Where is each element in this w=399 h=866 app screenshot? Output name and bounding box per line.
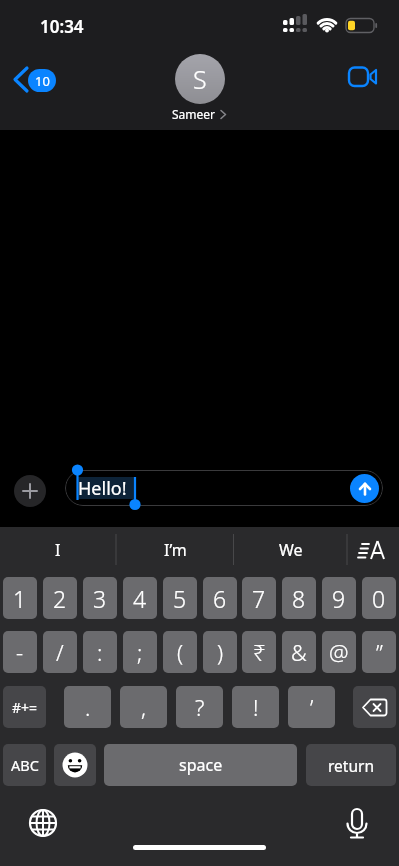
button[interactable]: ’ xyxy=(288,686,335,728)
button[interactable]: ; xyxy=(123,631,157,673)
button[interactable]: ) xyxy=(203,631,237,673)
staticText: ’ xyxy=(310,692,314,722)
staticText: 0 xyxy=(372,583,386,614)
staticText: / xyxy=(56,637,64,667)
staticText: . xyxy=(85,692,91,722)
staticText: I’m xyxy=(164,539,187,561)
staticText: ? xyxy=(195,692,205,722)
button[interactable]: ? xyxy=(176,686,223,728)
button[interactable]: 5 xyxy=(163,577,197,619)
staticText: 8 xyxy=(292,583,306,614)
button[interactable]: ( xyxy=(163,631,197,673)
button[interactable] xyxy=(334,801,379,846)
staticText: 4 xyxy=(133,583,147,614)
button[interactable] xyxy=(353,686,396,728)
staticText: , xyxy=(141,692,146,722)
staticText: 10:34 xyxy=(40,15,84,38)
button[interactable]: : xyxy=(83,631,117,673)
button[interactable] xyxy=(14,475,46,507)
button[interactable]: 2 xyxy=(43,577,77,619)
staticText: ( xyxy=(177,637,184,667)
button[interactable]: return xyxy=(306,744,396,786)
staticText: 9 xyxy=(332,583,346,614)
button[interactable]: 6 xyxy=(203,577,237,619)
button[interactable]: 4 xyxy=(123,577,157,619)
button[interactable] xyxy=(347,527,399,572)
staticText: ; xyxy=(137,637,143,667)
button[interactable] xyxy=(341,58,385,94)
staticText: Sameer xyxy=(172,106,216,122)
staticText: 7 xyxy=(252,583,266,614)
staticText: S xyxy=(193,62,207,96)
button[interactable]: ₹ xyxy=(242,631,276,673)
button[interactable]: 7 xyxy=(242,577,276,619)
staticText: ! xyxy=(253,692,259,722)
staticText: ) xyxy=(217,637,224,667)
staticText: 2 xyxy=(53,583,67,614)
staticText: 1 xyxy=(13,583,27,614)
button[interactable]: 1 xyxy=(3,577,37,619)
button[interactable]: 3 xyxy=(83,577,117,619)
button[interactable]: ! xyxy=(232,686,279,728)
button[interactable]: #+= xyxy=(3,686,46,728)
button[interactable]: & xyxy=(282,631,316,673)
staticText: 10 xyxy=(35,72,50,90)
staticText: 3 xyxy=(93,583,107,614)
staticText: #+= xyxy=(12,698,38,717)
staticText: return xyxy=(328,755,374,776)
button[interactable]: 8 xyxy=(282,577,316,619)
button[interactable]: - xyxy=(3,631,37,673)
button[interactable]: 9 xyxy=(322,577,356,619)
button[interactable]: Hello! xyxy=(65,470,383,506)
staticText: 6 xyxy=(213,583,227,614)
button[interactable] xyxy=(20,800,65,845)
button[interactable]: space xyxy=(104,744,297,786)
staticText: We xyxy=(279,539,303,561)
button[interactable]: , xyxy=(120,686,167,728)
button[interactable]: I xyxy=(0,527,116,572)
staticText: : xyxy=(97,637,103,667)
button[interactable]: I’m xyxy=(116,527,234,572)
button[interactable]: . xyxy=(64,686,111,728)
staticText: 5 xyxy=(173,583,187,614)
button[interactable]: ABC xyxy=(3,744,46,786)
button[interactable] xyxy=(350,474,379,503)
staticText: @ xyxy=(329,637,349,667)
button[interactable] xyxy=(54,744,96,786)
button[interactable]: We xyxy=(234,527,348,572)
staticText: - xyxy=(16,637,24,667)
staticText: ABC xyxy=(11,755,39,775)
button[interactable]: S xyxy=(175,54,225,104)
button[interactable]: 0 xyxy=(362,577,396,619)
staticText: space xyxy=(179,754,223,776)
staticText: & xyxy=(291,637,307,667)
button[interactable]: @ xyxy=(322,631,356,673)
staticText: ₹ xyxy=(253,637,266,667)
staticText: ” xyxy=(376,637,383,667)
button[interactable]: / xyxy=(43,631,77,673)
staticText: I xyxy=(55,539,61,561)
button[interactable]: ” xyxy=(362,631,396,673)
staticText: Hello! xyxy=(78,476,127,501)
button[interactable]: 10 xyxy=(6,62,64,98)
